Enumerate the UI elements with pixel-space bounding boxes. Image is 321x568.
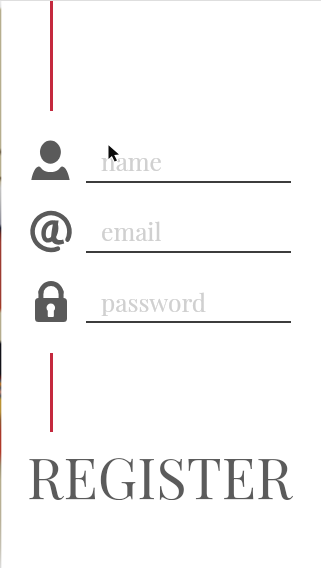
staticText: email bbox=[101, 214, 162, 247]
staticText: name bbox=[101, 144, 162, 177]
other: Password bbox=[35, 281, 67, 322]
button[interactable]: name bbox=[98, 144, 293, 178]
staticText: REGISTER bbox=[27, 438, 293, 500]
button[interactable]: email bbox=[98, 214, 293, 248]
staticText: password bbox=[101, 285, 207, 318]
other: Name bbox=[31, 140, 70, 181]
button[interactable]: password bbox=[98, 285, 293, 319]
other: Email bbox=[30, 210, 72, 252]
button[interactable]: REGISTER bbox=[27, 437, 293, 499]
